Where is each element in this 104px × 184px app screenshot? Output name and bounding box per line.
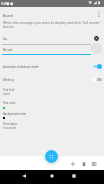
button[interactable]: Time lapse (0, 118, 104, 129)
button[interactable]: Recents (68, 170, 79, 181)
button[interactable]: Delete all (78, 158, 90, 170)
button[interactable]: Text font (0, 84, 104, 95)
staticText: Time lapse (3, 122, 18, 126)
staticText: Text color (3, 101, 16, 105)
staticText: Automatic slideshow mode (3, 65, 39, 69)
staticText: No ad (3, 48, 12, 52)
button[interactable]: Clear message (91, 43, 102, 54)
button[interactable]: Take photo (88, 158, 100, 170)
staticText: Blinking (3, 78, 14, 82)
button[interactable]: More options (93, 8, 104, 19)
button[interactable]: Home (46, 170, 57, 181)
button[interactable]: Blinking (0, 73, 104, 85)
staticText: Board (3, 13, 14, 18)
button[interactable]: Full screen (45, 150, 58, 163)
staticText: Text font (3, 88, 15, 92)
button[interactable]: Automatic slideshow mode (0, 60, 104, 72)
staticText: Write the messages you want to display a… (3, 20, 101, 25)
staticText: button (3, 24, 14, 29)
button[interactable]: Background color (0, 108, 104, 119)
button[interactable]: Clear message (91, 33, 102, 44)
button[interactable]: Add message (67, 158, 79, 170)
staticText: Go (3, 37, 8, 41)
button[interactable]: Back (18, 170, 29, 181)
staticText: droid (3, 92, 10, 96)
staticText: Background color (3, 112, 27, 116)
staticText: 9:59 (1, 2, 8, 6)
staticText: 6 seconds (3, 126, 17, 130)
button[interactable]: Text color (0, 97, 104, 108)
